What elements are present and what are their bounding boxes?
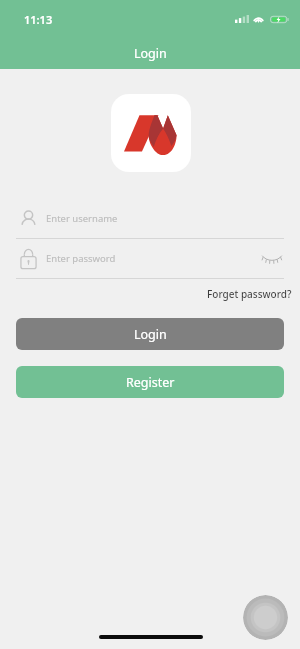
button[interactable]: Forget password?: [202, 283, 297, 305]
staticText: Register: [126, 374, 175, 391]
button[interactable]: Enter password: [16, 244, 284, 273]
staticText: Enter password: [46, 252, 262, 265]
button[interactable]: Assistive touch: [243, 595, 288, 640]
staticText: Login: [134, 326, 167, 343]
staticText: Enter username: [46, 212, 284, 225]
button[interactable]: Login: [16, 318, 284, 350]
staticText: Forget password?: [207, 287, 292, 301]
staticText: Login: [134, 45, 167, 62]
button[interactable]: Enter username: [16, 204, 284, 233]
staticText: 11:13: [24, 12, 53, 27]
button[interactable]: Register: [16, 366, 284, 398]
